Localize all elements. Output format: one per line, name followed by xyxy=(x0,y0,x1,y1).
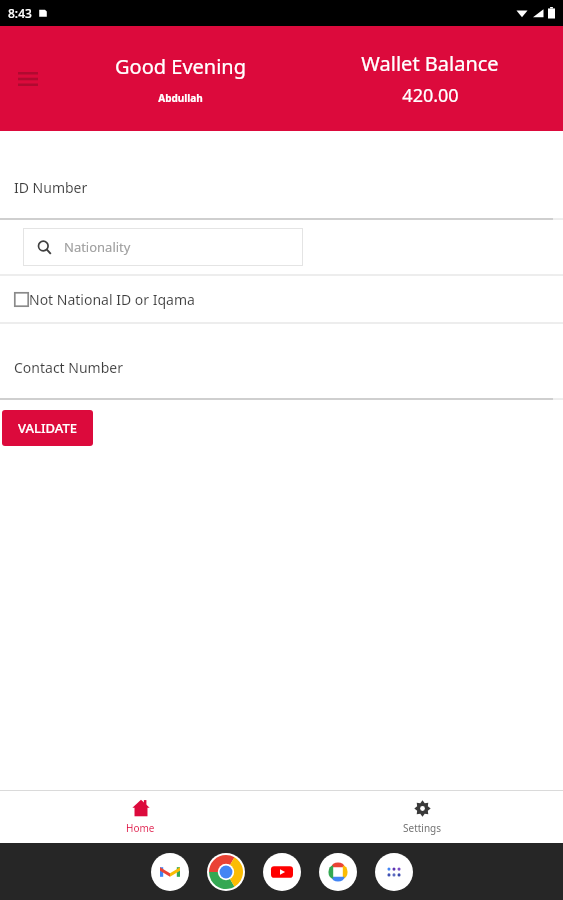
staticText: 420.00 xyxy=(402,83,459,108)
staticText: Home xyxy=(126,821,155,835)
button[interactable]: Not National ID or Iqama xyxy=(14,290,195,309)
button[interactable]: Open navigation menu xyxy=(8,59,48,99)
button[interactable]: Settings xyxy=(281,791,563,843)
staticText: ID Number xyxy=(14,178,88,197)
button[interactable]: Nationality xyxy=(23,228,303,266)
staticText: Nationality xyxy=(64,238,131,256)
button[interactable]: VALIDATE xyxy=(2,410,93,446)
staticText: Good Evening xyxy=(115,53,246,80)
staticText: VALIDATE xyxy=(18,419,77,437)
button[interactable]: YouTube xyxy=(263,853,301,891)
button[interactable]: All apps xyxy=(375,853,413,891)
button[interactable]: Photos xyxy=(319,853,357,891)
staticText: Not National ID or Iqama xyxy=(29,290,195,309)
staticText: Contact Number xyxy=(14,358,123,377)
button[interactable]: Chrome xyxy=(207,853,245,891)
staticText: Abdullah xyxy=(158,91,203,105)
button[interactable]: Home xyxy=(0,791,281,843)
button[interactable]: Gmail xyxy=(151,853,189,891)
staticText: Wallet Balance xyxy=(361,50,499,77)
staticText: 8:43 xyxy=(8,5,32,21)
staticText: Settings xyxy=(403,821,442,835)
